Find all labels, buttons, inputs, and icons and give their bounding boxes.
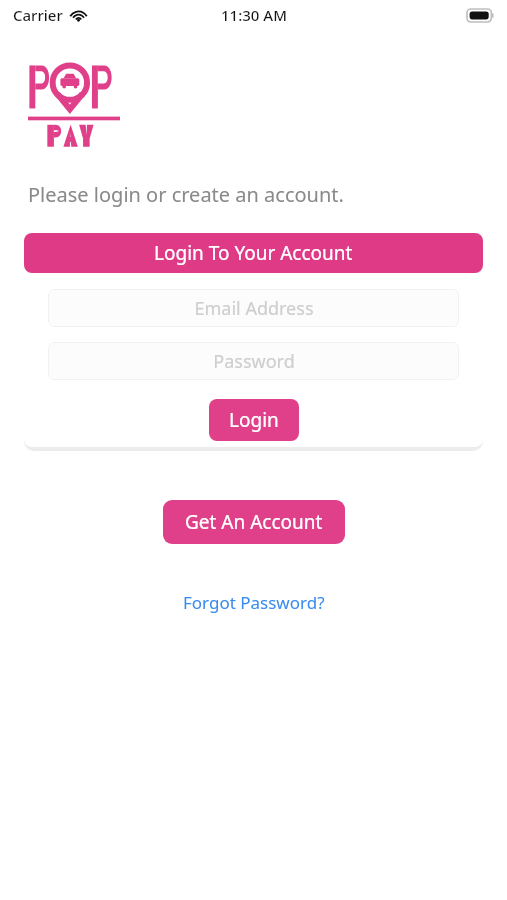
staticText: Please login or create an account. (28, 181, 344, 208)
staticText: Login (229, 407, 279, 433)
staticText: Password (213, 349, 295, 374)
staticText: 11:30 AM (221, 5, 287, 25)
button[interactable]: Password (48, 342, 459, 380)
button[interactable]: Email Address (48, 289, 459, 327)
staticText: Carrier (13, 5, 63, 25)
button[interactable]: Get An Account (163, 500, 345, 544)
staticText: Login To Your Account (154, 240, 353, 266)
button[interactable]: Login (209, 399, 299, 441)
staticText: Email Address (194, 296, 314, 321)
button[interactable]: Login To Your Account (24, 233, 483, 273)
staticText: Forgot Password? (183, 591, 325, 614)
staticText: Get An Account (185, 509, 323, 535)
button[interactable]: Forgot Password? (173, 587, 335, 618)
